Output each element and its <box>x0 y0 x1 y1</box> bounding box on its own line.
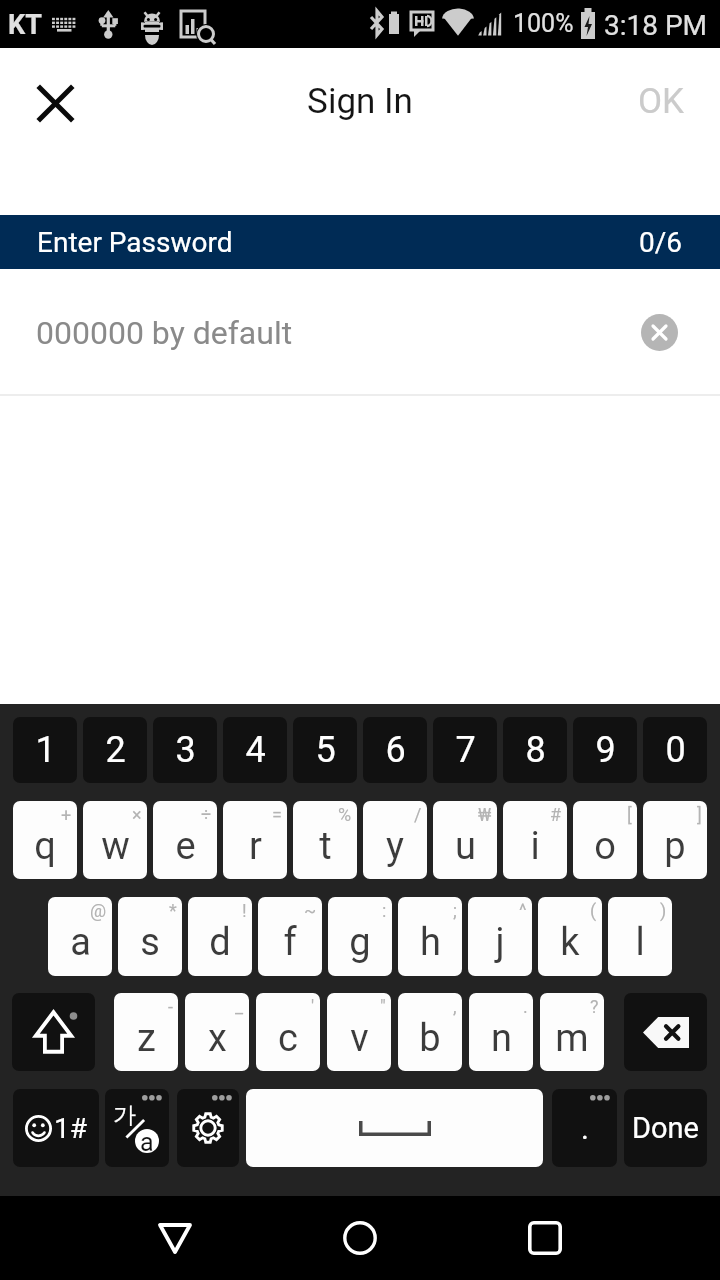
staticText: i <box>530 824 540 869</box>
button[interactable]: a <box>48 897 112 976</box>
button[interactable]: OK <box>618 65 705 138</box>
staticText: g <box>349 920 371 965</box>
staticText: 3:18 PM <box>604 9 708 42</box>
staticText: * <box>169 900 177 921</box>
button[interactable]: u <box>433 801 497 879</box>
staticText: ! <box>242 900 247 921</box>
staticText: 4 <box>245 729 266 771</box>
button[interactable]: 7 <box>433 717 497 783</box>
button[interactable]: y <box>363 801 427 879</box>
staticText: 1 <box>35 729 56 771</box>
button[interactable]: s <box>118 897 182 976</box>
staticText: [ <box>627 804 632 825</box>
button[interactable]: Change language <box>105 1089 169 1167</box>
staticText: j <box>495 920 505 965</box>
staticText: c <box>278 1016 298 1061</box>
button[interactable]: p <box>643 801 707 879</box>
button[interactable]: Settings <box>177 1089 239 1167</box>
button[interactable]: 0 <box>643 717 707 783</box>
staticText: . <box>523 996 528 1017</box>
staticText: , <box>453 996 457 1017</box>
button[interactable]: m <box>540 993 604 1071</box>
button[interactable]: Close <box>15 63 95 143</box>
button[interactable]: Back <box>135 1196 215 1280</box>
button[interactable]: b <box>398 993 462 1071</box>
staticText: y <box>386 824 404 869</box>
staticText: KT <box>8 9 42 41</box>
staticText: ₩ <box>478 804 492 825</box>
button[interactable]: h <box>398 897 462 976</box>
button[interactable]: w <box>83 801 147 879</box>
button[interactable]: Shift <box>12 993 95 1071</box>
button[interactable]: r <box>223 801 287 879</box>
staticText: f <box>283 920 297 965</box>
button[interactable]: Clear <box>641 314 678 351</box>
button[interactable]: v <box>327 993 391 1071</box>
staticText: ; <box>453 900 457 921</box>
button[interactable]: Symbols and emoji <box>13 1089 99 1167</box>
staticText: 7 <box>455 729 476 771</box>
button[interactable]: e <box>153 801 217 879</box>
button[interactable]: Space <box>246 1089 543 1167</box>
button[interactable]: c <box>256 993 320 1071</box>
staticText: 9 <box>595 729 616 771</box>
button[interactable]: . <box>552 1089 617 1167</box>
button[interactable]: f <box>258 897 322 976</box>
button[interactable]: 2 <box>83 717 147 783</box>
staticText: Enter Password <box>37 226 233 259</box>
button[interactable]: 9 <box>573 717 637 783</box>
staticText: 5 <box>315 729 336 771</box>
button[interactable]: Done <box>624 1089 707 1167</box>
staticText: = <box>272 804 282 825</box>
staticText: - <box>168 996 173 1017</box>
button[interactable]: j <box>468 897 532 976</box>
button[interactable]: Backspace <box>624 993 707 1071</box>
staticText: 000000 by default <box>36 314 293 352</box>
staticText: e <box>175 824 196 869</box>
button[interactable]: l <box>608 897 672 976</box>
staticText: t <box>319 824 332 869</box>
button[interactable]: 4 <box>223 717 287 783</box>
button[interactable]: 8 <box>503 717 567 783</box>
staticText: . <box>581 1111 589 1146</box>
staticText: × <box>132 804 142 825</box>
button[interactable]: o <box>573 801 637 879</box>
staticText: x <box>208 1016 227 1061</box>
button[interactable]: Home <box>320 1196 400 1280</box>
button[interactable]: 3 <box>153 717 217 783</box>
button[interactable]: i <box>503 801 567 879</box>
staticText: n <box>491 1016 512 1061</box>
staticText: " <box>380 996 386 1017</box>
staticText: r <box>249 824 262 869</box>
button[interactable]: 5 <box>293 717 357 783</box>
button[interactable]: n <box>469 993 533 1071</box>
staticText: ( <box>590 900 597 921</box>
button[interactable]: 6 <box>363 717 427 783</box>
staticText: 0/6 <box>639 226 683 259</box>
button[interactable]: q <box>13 801 77 879</box>
staticText: + <box>61 804 72 825</box>
staticText: a <box>140 1129 154 1152</box>
staticText: k <box>560 920 580 965</box>
button[interactable]: 1 <box>13 717 77 783</box>
button[interactable]: k <box>538 897 602 976</box>
staticText: d <box>209 920 231 965</box>
button[interactable]: g <box>328 897 392 976</box>
button[interactable]: Recents <box>505 1196 585 1280</box>
staticText: ? <box>590 996 599 1017</box>
button[interactable]: z <box>114 993 178 1071</box>
staticText: u <box>455 824 476 869</box>
staticText: OK <box>638 81 685 122</box>
button[interactable]: t <box>293 801 357 879</box>
staticText: 8 <box>525 729 546 771</box>
button[interactable]: x <box>185 993 249 1071</box>
staticText: h <box>420 920 441 965</box>
staticText: Sign In <box>0 81 720 122</box>
staticText: b <box>419 1016 441 1061</box>
button[interactable]: d <box>188 897 252 976</box>
staticText: m <box>555 1016 589 1061</box>
staticText: 6 <box>385 729 406 771</box>
staticText: 2 <box>105 729 126 771</box>
staticText: z <box>137 1016 156 1061</box>
staticText: p <box>664 824 686 869</box>
